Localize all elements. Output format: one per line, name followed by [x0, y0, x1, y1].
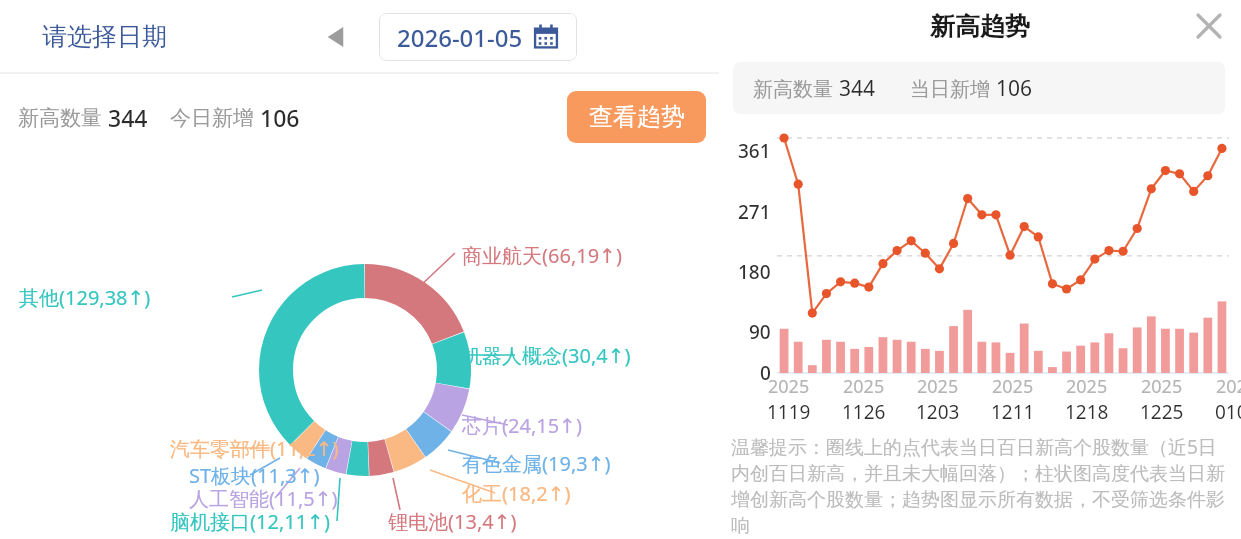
- button[interactable]: Close: [1189, 6, 1229, 46]
- staticText: 新高数量: [753, 75, 839, 102]
- staticText: 今日新增: [170, 103, 260, 132]
- staticText: 1119: [767, 399, 811, 425]
- staticText: 2025: [992, 374, 1034, 399]
- staticText: ST板块(11,3↑): [189, 462, 320, 489]
- staticText: 1211: [991, 399, 1035, 425]
- staticText: 0105: [1215, 399, 1241, 425]
- staticText: 汽车零部件(11,2↑): [170, 435, 339, 462]
- staticText: 请选择日期: [42, 21, 167, 52]
- staticText: 2026: [1216, 374, 1241, 399]
- staticText: 新高趋势: [930, 11, 1030, 42]
- staticText: 2025: [768, 374, 810, 399]
- staticText: 温馨提示：圈线上的点代表当日百日新高个股数量（近5日内创百日新高，并且未大幅回落…: [731, 434, 1231, 538]
- staticText: 344: [108, 102, 148, 133]
- staticText: 锂电池(13,4↑): [388, 508, 517, 535]
- staticText: 商业航天(66,19↑): [462, 242, 622, 269]
- staticText: 271: [738, 199, 771, 225]
- staticText: 芯片(24,15↑): [462, 412, 582, 439]
- staticText: 新高数量: [18, 103, 108, 132]
- staticText: 1218: [1065, 399, 1109, 425]
- staticText: 1203: [916, 399, 960, 425]
- staticText: 106: [996, 74, 1033, 103]
- button[interactable]: 2026-01-05: [379, 13, 577, 61]
- staticText: 其他(129,38↑): [19, 284, 151, 311]
- staticText: 0: [760, 360, 771, 386]
- button[interactable]: Previous day: [315, 16, 357, 58]
- staticText: 2025: [1141, 374, 1183, 399]
- staticText: 2026-01-05: [397, 21, 523, 54]
- staticText: 当日新增: [910, 75, 996, 102]
- staticText: 2025: [843, 374, 885, 399]
- staticText: 1225: [1140, 399, 1184, 425]
- staticText: 180: [738, 259, 771, 285]
- staticText: 化工(18,2↑): [462, 480, 571, 507]
- staticText: 106: [260, 102, 300, 133]
- staticText: 2025: [917, 374, 959, 399]
- staticText: 人工智能(11,5↑): [189, 485, 338, 512]
- staticText: 脑机接口(12,11↑): [170, 508, 330, 535]
- staticText: 361: [738, 138, 771, 164]
- staticText: 查看趋势: [589, 102, 685, 132]
- staticText: 344: [839, 74, 876, 103]
- staticText: 机器人概念(30,4↑): [462, 342, 631, 369]
- staticText: 90: [749, 319, 771, 345]
- button[interactable]: 查看趋势: [567, 91, 706, 143]
- staticText: 有色金属(19,3↑): [462, 450, 611, 477]
- staticText: 1126: [842, 399, 886, 425]
- staticText: 2025: [1066, 374, 1108, 399]
